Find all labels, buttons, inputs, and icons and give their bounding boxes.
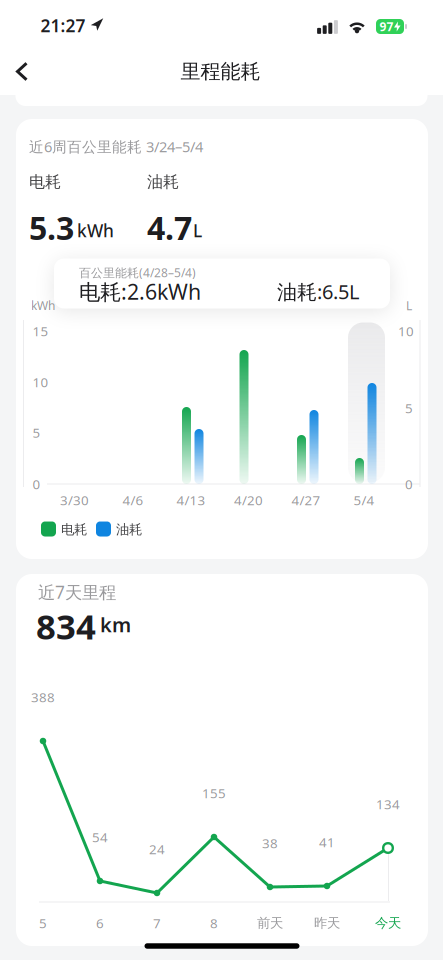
staticText: 97 <box>379 18 393 34</box>
staticText: 8 <box>210 914 218 932</box>
staticText: 0 <box>32 475 40 493</box>
staticText: 24 <box>149 840 165 858</box>
button[interactable]: 4/20 <box>230 322 267 482</box>
staticText: 近6周百公里能耗 3/24–5/4 <box>29 137 203 156</box>
staticText: 油耗 <box>116 521 142 538</box>
staticText: 15 <box>32 322 48 340</box>
staticText: 电耗 <box>29 172 61 192</box>
staticText: 4.7 <box>147 206 192 249</box>
staticText: 21:27 <box>40 14 85 37</box>
staticText: 134 <box>376 795 400 813</box>
staticText: 6 <box>96 914 104 932</box>
staticText: 电耗 <box>61 521 87 538</box>
staticText: 里程能耗 <box>180 59 260 84</box>
staticText: 3/30 <box>60 491 89 509</box>
button[interactable]: Back <box>7 55 36 88</box>
staticText: kWh <box>77 219 114 242</box>
staticText: L <box>406 297 412 313</box>
staticText: 5 <box>39 914 47 932</box>
staticText: 54 <box>92 828 108 846</box>
staticText: kWh <box>31 297 55 313</box>
button[interactable]: 5 <box>39 914 47 932</box>
staticText: 4/13 <box>176 491 205 509</box>
button[interactable]: 前天 <box>257 915 283 931</box>
button[interactable]: 5/4 <box>348 322 385 482</box>
button[interactable]: 4/13 <box>172 322 209 482</box>
staticText: 5/4 <box>353 491 374 509</box>
button[interactable]: 今天 <box>375 915 401 931</box>
button[interactable]: 4/27 <box>287 322 324 482</box>
staticText: km <box>100 611 131 638</box>
staticText: 4/6 <box>122 491 143 509</box>
staticText: 10 <box>32 373 48 391</box>
staticText: 5 <box>32 424 40 441</box>
staticText: 38 <box>262 834 278 852</box>
staticText: L <box>193 219 202 242</box>
staticText: 4/20 <box>234 491 263 509</box>
staticText: 今天 <box>375 915 401 931</box>
staticText: 41 <box>319 833 335 851</box>
staticText: 5 <box>405 399 413 417</box>
staticText: 155 <box>202 784 226 802</box>
staticText: 10 <box>398 322 414 340</box>
staticText: 388 <box>31 688 55 706</box>
staticText: 834 <box>36 603 96 649</box>
button[interactable]: 7 <box>153 914 161 932</box>
staticText: 4/27 <box>291 491 320 509</box>
staticText: 油耗 <box>147 172 179 192</box>
staticText: 近7天里程 <box>38 580 116 603</box>
staticText: 前天 <box>257 915 283 931</box>
button[interactable]: 8 <box>210 914 218 932</box>
staticText: 昨天 <box>314 915 340 931</box>
staticText: 0 <box>405 475 413 493</box>
button[interactable]: 6 <box>96 914 104 932</box>
staticText: 电耗:2.6kWh <box>79 277 201 306</box>
staticText: 5.3 <box>29 206 74 249</box>
button[interactable]: 昨天 <box>314 915 340 931</box>
staticText: 油耗:6.5L <box>277 278 359 305</box>
staticText: 7 <box>153 914 161 932</box>
staticText: 百公里能耗(4/28–5/4) <box>79 264 196 280</box>
